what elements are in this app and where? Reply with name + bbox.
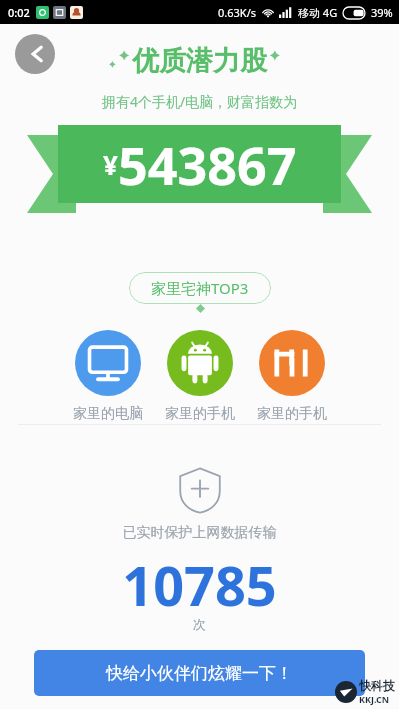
- staticText: 优质潜力股: [132, 44, 267, 78]
- staticText: 次: [0, 616, 399, 632]
- staticText: 543867: [118, 129, 297, 200]
- staticText: 家里宅神TOP3: [151, 278, 249, 298]
- button[interactable]: 家里的手机: [165, 330, 235, 423]
- staticText: 家里的电脑: [73, 405, 143, 423]
- button[interactable]: 快给小伙伴们炫耀一下！: [34, 650, 365, 696]
- button[interactable]: 家里的手机: [257, 330, 327, 423]
- staticText: 39%: [371, 5, 393, 20]
- staticText: 移动 4G: [298, 5, 338, 20]
- button[interactable]: 家里宅神TOP3: [129, 272, 271, 304]
- staticText: 拥有4个手机/电脑，财富指数为: [0, 92, 399, 111]
- staticText: ¥: [103, 147, 118, 182]
- staticText: KKJ.CN: [359, 693, 390, 705]
- staticText: 0:02: [8, 5, 30, 20]
- staticText: 家里的手机: [257, 405, 327, 423]
- staticText: 家里的手机: [165, 405, 235, 423]
- staticText: 0.63K/s: [218, 5, 256, 20]
- staticText: 已实时保护上网数据传输: [0, 524, 399, 542]
- staticText: 快给小伙伴们炫耀一下！: [106, 663, 293, 684]
- staticText: 快科技: [359, 678, 395, 693]
- staticText: 10785: [0, 548, 399, 622]
- button[interactable]: Back: [15, 34, 55, 74]
- button[interactable]: 家里的电脑: [73, 330, 143, 423]
